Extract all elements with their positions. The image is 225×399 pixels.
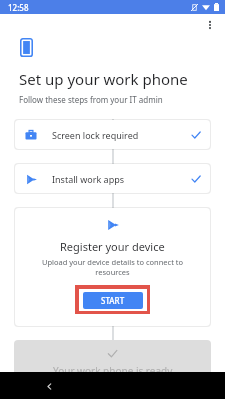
staticText: Set up your work phone <box>19 69 188 89</box>
button[interactable]: Screen lock required <box>15 120 210 149</box>
staticText: Screen lock required <box>52 129 139 141</box>
staticText: Upload your device details to connect to… <box>33 257 192 277</box>
staticText: Install work apps <box>52 173 125 185</box>
button[interactable]: More options <box>200 15 220 35</box>
staticText: Your work phone is ready <box>53 364 173 378</box>
button[interactable]: Back <box>38 375 60 397</box>
button[interactable]: START <box>83 292 143 309</box>
staticText: START <box>101 295 125 306</box>
staticText: Follow these steps from your IT admin <box>19 94 163 105</box>
button[interactable]: Install work apps <box>15 164 210 193</box>
staticText: Register your device <box>60 239 165 254</box>
button[interactable]: Your work phone is ready <box>14 340 211 390</box>
staticText: 12:58 <box>8 2 29 13</box>
